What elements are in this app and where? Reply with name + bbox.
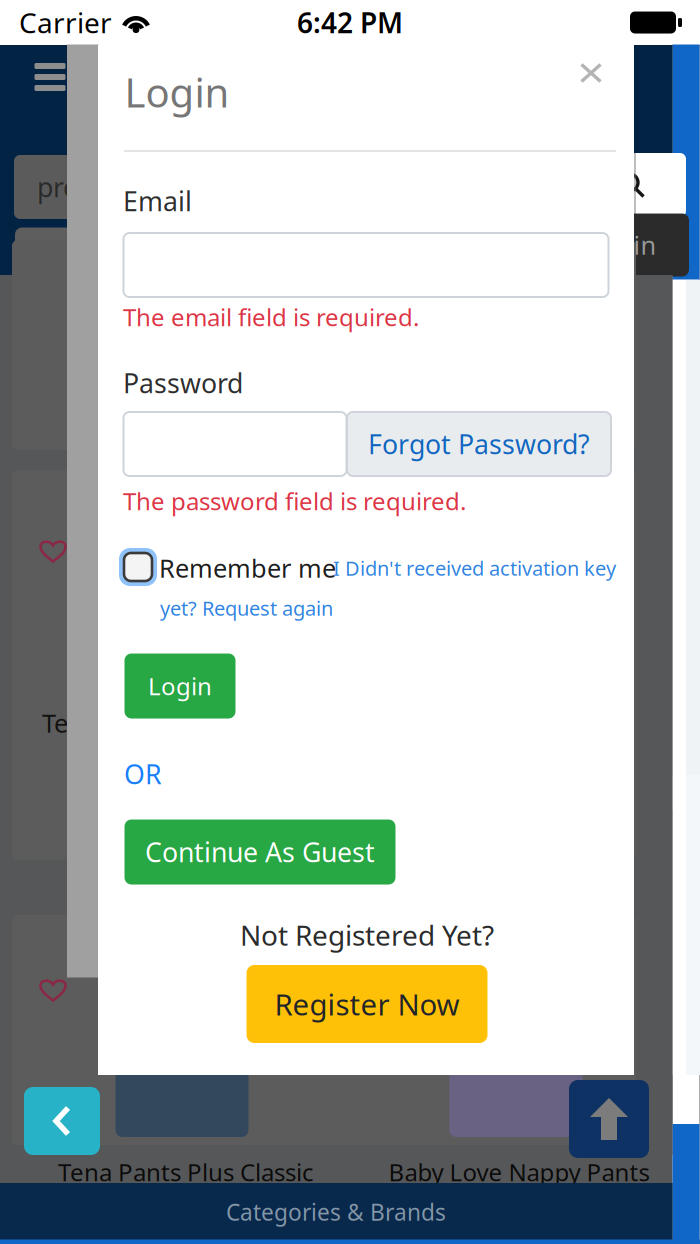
button[interactable]: I Didn't received activation key <box>333 555 633 581</box>
staticText: Continue As Guest <box>145 834 375 870</box>
staticText: I Didn't received activation key <box>333 555 616 581</box>
button[interactable]: yet? Request again <box>160 595 360 621</box>
button[interactable]: Forgot Password? <box>347 412 611 476</box>
staticText: Password <box>123 365 243 401</box>
staticText: Baby Love Nappy Pants <box>388 1156 649 1188</box>
staticText: The email field is required. <box>123 301 419 333</box>
staticText: yet? Request again <box>160 595 333 621</box>
staticText: Te <box>42 706 68 740</box>
staticText: 6:42 PM <box>297 4 403 41</box>
button[interactable]: Register Now <box>246 965 487 1043</box>
button[interactable]: Remember me <box>119 548 157 586</box>
staticText: Login <box>589 228 656 262</box>
staticText: Login <box>124 65 229 118</box>
button[interactable]: Previous <box>24 1087 100 1155</box>
staticText: product name or code <box>37 169 313 205</box>
staticText: The password field is required. <box>123 485 466 517</box>
staticText: Email <box>123 183 192 219</box>
staticText: OR <box>124 756 162 792</box>
staticText: Forgot Password? <box>368 426 590 462</box>
staticText: Not Registered Yet? <box>240 916 494 954</box>
staticText: Tena Pants Plus Classic <box>58 1156 314 1188</box>
button[interactable]: Close <box>564 47 618 99</box>
button[interactable]: Login <box>124 653 235 718</box>
staticText: Login <box>148 670 212 702</box>
staticText: Categories & Brands <box>226 1197 446 1227</box>
button[interactable]: Scroll to top <box>569 1080 649 1158</box>
staticText: Register Now <box>274 984 459 1023</box>
staticText: Carrier <box>19 4 112 41</box>
staticText: Remember me <box>159 551 336 585</box>
button[interactable]: Continue As Guest <box>124 819 395 884</box>
